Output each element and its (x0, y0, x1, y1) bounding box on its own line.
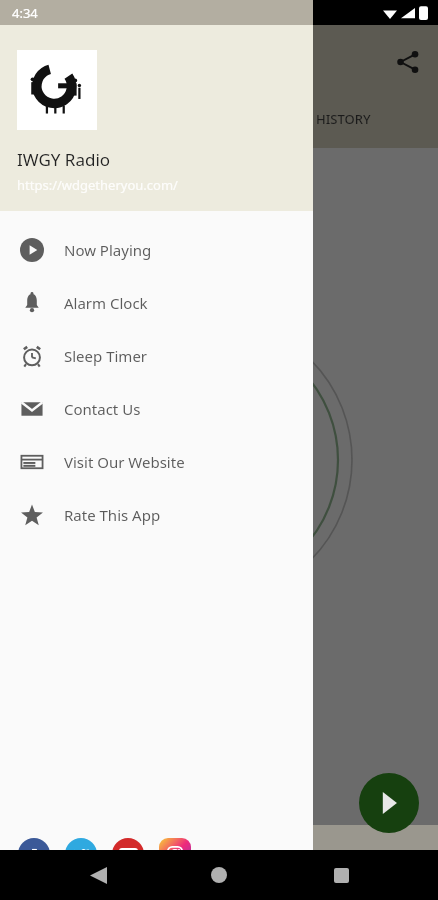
button[interactable]: Twitter (65, 838, 97, 870)
staticText: HISTORY (316, 110, 371, 128)
button[interactable]: Home (195, 851, 243, 899)
staticText: Now Playing (64, 240, 152, 260)
staticText: https://wdgetheryou.com/ (17, 176, 178, 194)
button[interactable]: Recent apps (317, 851, 365, 899)
button[interactable]: Instagram (159, 838, 191, 870)
staticText: Visit Our Website (64, 452, 185, 472)
button[interactable]: Visit Our Website (0, 435, 313, 488)
staticText: Sleep Timer (64, 346, 148, 366)
button[interactable]: Now Playing (0, 223, 313, 276)
staticText: Alarm Clock (64, 293, 148, 313)
button[interactable]: Play (359, 773, 419, 833)
button[interactable]: Facebook (18, 838, 50, 870)
button[interactable]: Contact Us (0, 382, 313, 435)
button[interactable]: YouTube (112, 838, 144, 870)
button[interactable]: Rate This App (0, 488, 313, 541)
staticText: 4:34 (12, 4, 38, 22)
staticText: IWGY Radio (17, 148, 111, 171)
button[interactable]: Alarm Clock (0, 276, 313, 329)
staticText: Rate This App (64, 505, 161, 525)
button[interactable]: HISTORY (316, 110, 371, 136)
button[interactable]: Back (74, 851, 122, 899)
button[interactable]: Sleep Timer (0, 329, 313, 382)
staticText: Contact Us (64, 399, 141, 419)
button[interactable]: Share (386, 40, 430, 84)
